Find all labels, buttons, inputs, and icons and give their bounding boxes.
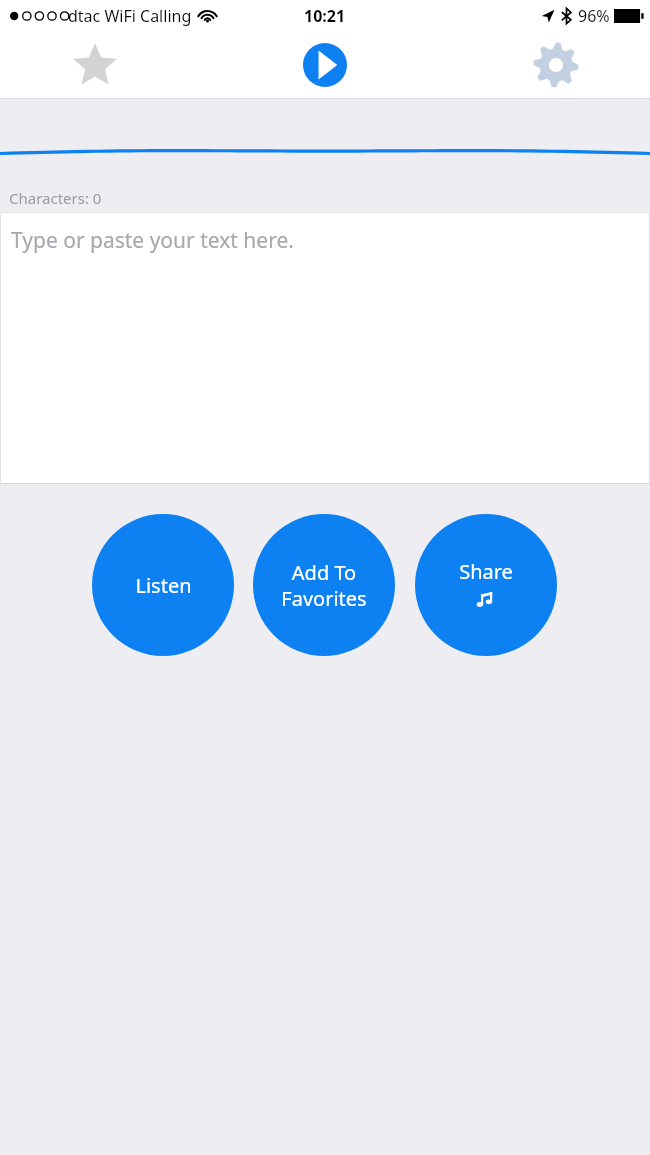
button[interactable]: Listen	[92, 514, 234, 656]
button[interactable]: Favorites	[63, 33, 127, 97]
staticText: Add To Favorites	[281, 559, 367, 611]
button[interactable]: Type or paste your text here.	[0, 212, 650, 484]
staticText: Characters: 0	[9, 188, 102, 208]
button[interactable]: Share	[415, 514, 557, 656]
staticText: Type or paste your text here.	[11, 226, 294, 255]
button[interactable]: Add To Favorites	[253, 514, 395, 656]
staticText: dtac WiFi Calling	[68, 5, 192, 27]
staticText: 96%	[578, 5, 610, 27]
staticText: Listen	[135, 572, 192, 599]
staticText: 10:21	[304, 5, 346, 27]
button[interactable]: Settings	[524, 33, 588, 97]
staticText: Share	[459, 558, 513, 585]
button[interactable]: Play	[296, 36, 354, 94]
